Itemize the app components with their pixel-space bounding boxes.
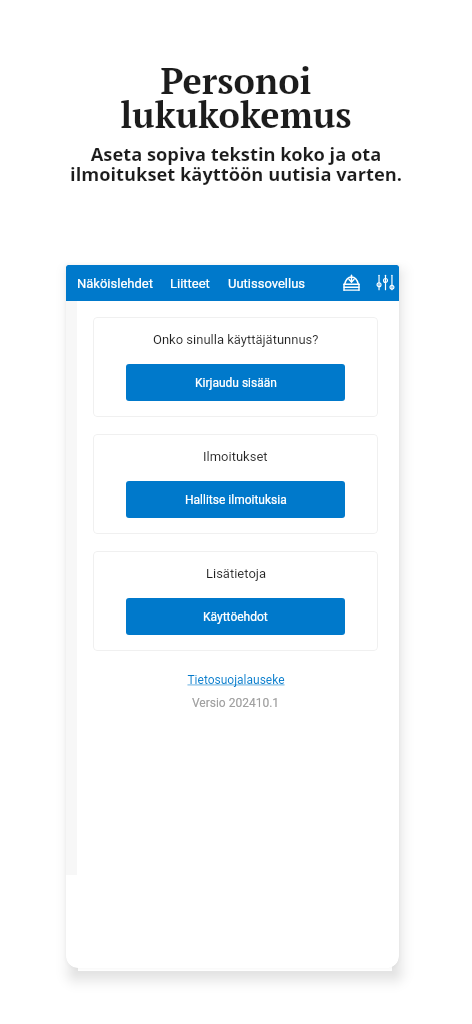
staticText: Aseta sopiva tekstin koko ja ota ilmoitu… xyxy=(0,141,472,186)
staticText: Ilmoitukset xyxy=(203,449,268,464)
staticText: Kirjaudu sisään xyxy=(195,376,277,390)
staticText: Onko sinulla käyttäjätunnus? xyxy=(153,332,319,347)
staticText: Käyttöehdot xyxy=(203,610,268,624)
staticText: Versio 202410.1 xyxy=(93,696,378,710)
button[interactable]: Uutissovellus xyxy=(228,276,306,291)
button[interactable]: Käyttöehdot xyxy=(126,598,345,635)
staticText: Uutissovellus xyxy=(228,276,306,291)
button[interactable]: Asetukset xyxy=(368,265,399,299)
button[interactable]: Hallitse ilmoituksia xyxy=(126,481,345,518)
staticText: Näköislehdet xyxy=(77,276,153,291)
button[interactable]: Liitteet xyxy=(170,276,210,291)
staticText: Lisätietoja xyxy=(206,566,266,581)
button[interactable]: Lataukset xyxy=(334,265,368,299)
button[interactable]: Näköislehdet xyxy=(77,276,153,291)
button[interactable]: Tietosuojalauseke xyxy=(187,673,285,687)
staticText: Liitteet xyxy=(170,276,210,291)
staticText: Hallitse ilmoituksia xyxy=(185,493,287,507)
button[interactable]: Kirjaudu sisään xyxy=(126,364,345,401)
staticText: Personoi lukukokemus xyxy=(0,57,472,138)
